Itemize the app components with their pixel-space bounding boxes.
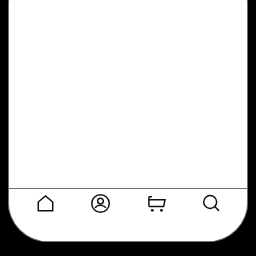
button[interactable]: Account: [74, 189, 126, 231]
button[interactable]: Cart: [130, 189, 182, 231]
button[interactable]: Search: [185, 189, 237, 231]
button[interactable]: Home: [19, 189, 71, 231]
